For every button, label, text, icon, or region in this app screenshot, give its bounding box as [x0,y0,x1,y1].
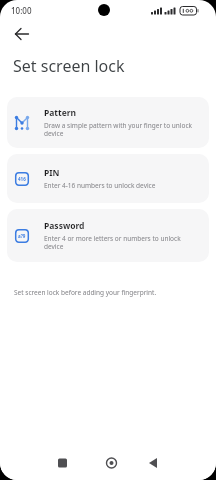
button[interactable] [9,21,35,47]
staticText: PIN [44,167,60,179]
button[interactable]: a?9 [7,209,209,262]
staticText: a?9 [18,233,26,239]
staticText: Enter 4 or more letters or numbers to un… [44,234,181,251]
button[interactable]: Pattern [7,97,209,148]
staticText: Set screen lock [13,55,125,77]
staticText: Enter 4-16 numbers to unlock device [44,181,156,190]
staticText: Password [44,220,85,232]
staticText: Pattern [44,107,77,119]
button[interactable]: 416 [7,154,209,203]
staticText: 10:00 [11,5,32,16]
staticText: Draw a simple pattern with your finger t… [44,121,193,138]
staticText: 416 [18,176,26,182]
staticText: Set screen lock before adding your finge… [14,288,157,297]
